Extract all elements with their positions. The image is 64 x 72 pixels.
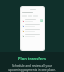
other: Transfer category (22, 25, 24, 27)
button[interactable]: Transfer category (22, 19, 43, 22)
staticText: Schedule and review all your upcoming pa… (4, 64, 60, 72)
other: Transfer category (22, 30, 24, 32)
button[interactable]: Transfer category (22, 29, 43, 32)
other: Confirmed (40, 19, 43, 22)
button[interactable]: Transfer category (22, 24, 43, 27)
other: Transfer category (22, 20, 24, 22)
other: Transfer category (22, 35, 24, 37)
button[interactable]: Transfer category (22, 34, 43, 37)
button[interactable]: Transfer category (21, 7, 44, 50)
staticText: Plan transfers (0, 56, 64, 61)
